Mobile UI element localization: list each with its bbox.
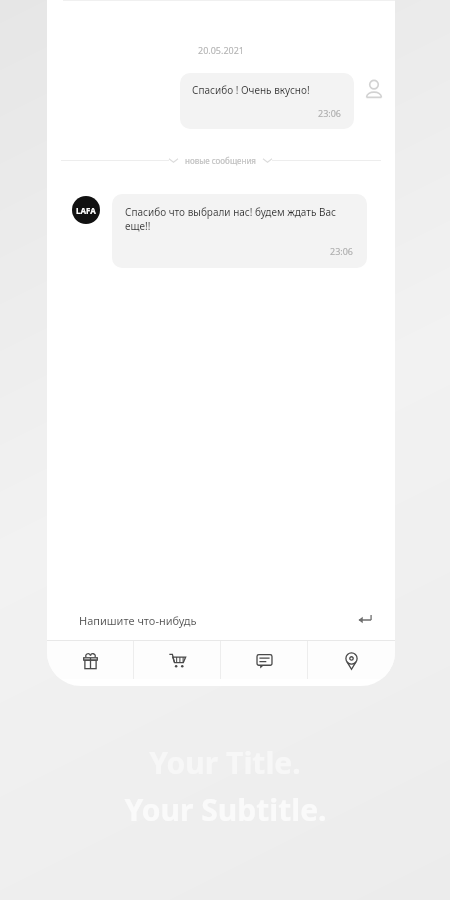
staticText: LAFA <box>76 205 96 216</box>
button[interactable]: Напишите что-нибудь <box>47 600 395 640</box>
staticText: Your Title. <box>149 742 301 783</box>
other: User avatar <box>363 78 385 100</box>
button[interactable]: Спасибо ! Очень вкусно! <box>180 73 354 129</box>
button[interactable]: Спасибо что выбрали нас! будем ждать Вас… <box>112 194 367 268</box>
staticText: Your Subtitle. <box>124 789 327 830</box>
staticText: Спасибо ! Очень вкусно! <box>192 83 310 97</box>
staticText: 23:06 <box>318 107 342 119</box>
staticText: 20.05.2021 <box>198 44 245 56</box>
staticText: Спасибо что выбрали нас! будем ждать Вас… <box>125 205 354 233</box>
button[interactable]: Gifts <box>47 641 134 679</box>
staticText: Напишите что-нибудь <box>79 613 197 628</box>
other: Send <box>357 612 373 628</box>
staticText: 23:06 <box>330 245 354 257</box>
staticText: новые сообщения <box>185 155 256 166</box>
button[interactable]: Location <box>308 641 395 679</box>
button[interactable]: Cart <box>134 641 221 679</box>
other: LAFA logo <box>72 196 100 224</box>
button[interactable]: Messages <box>221 641 308 679</box>
